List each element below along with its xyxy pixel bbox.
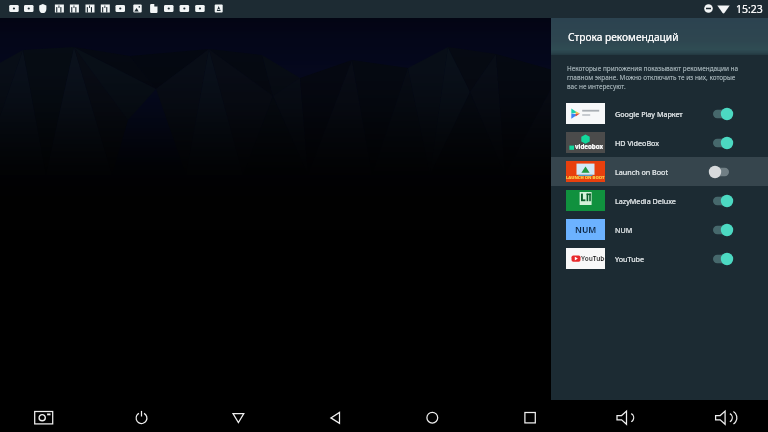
button[interactable]: YouTube bbox=[551, 244, 768, 273]
button[interactable]: Google Play Маркет bbox=[551, 99, 768, 128]
button[interactable]: Screenshot bbox=[28, 401, 60, 431]
button[interactable]: Volume up bbox=[709, 401, 741, 431]
button[interactable]: videobox bbox=[551, 128, 768, 157]
button[interactable]: Power bbox=[126, 401, 158, 431]
button[interactable]: LazyMedia Deluxe bbox=[551, 186, 768, 215]
staticText: NUM bbox=[575, 224, 597, 236]
button[interactable]: LazyMedia Deluxe on bbox=[708, 191, 734, 211]
staticText: YouTube bbox=[581, 254, 605, 263]
staticText: Launch on Boot bbox=[615, 167, 669, 177]
button[interactable]: Home bbox=[416, 401, 448, 431]
staticText: HD VideoBox bbox=[615, 138, 660, 148]
button[interactable]: Back bbox=[319, 401, 351, 431]
staticText: videobox bbox=[575, 142, 604, 150]
button[interactable]: Collapse bbox=[222, 401, 254, 431]
staticText: Google Play Маркет bbox=[615, 109, 683, 119]
button[interactable]: Volume down bbox=[610, 401, 642, 431]
button[interactable]: NUM bbox=[551, 215, 768, 244]
button[interactable]: Launch on Boot off bbox=[708, 162, 734, 182]
button[interactable]: HD VideoBox on bbox=[708, 133, 734, 153]
staticText: LAUNCH ON BOOT bbox=[566, 175, 605, 181]
button[interactable]: NUM on bbox=[708, 220, 734, 240]
button[interactable]: YouTube on bbox=[708, 249, 734, 269]
staticText: NUM bbox=[615, 225, 633, 235]
staticText: 15:23 bbox=[736, 2, 763, 16]
button[interactable]: Recent apps bbox=[514, 401, 546, 431]
staticText: YouTube bbox=[615, 254, 645, 264]
staticText: Некоторые приложения показывают рекоменд… bbox=[567, 64, 741, 91]
staticText: Строка рекомендаций bbox=[568, 30, 679, 44]
button[interactable]: Google Play Маркет on bbox=[708, 104, 734, 124]
button[interactable]: LAUNCH ON BOOT bbox=[551, 157, 768, 186]
staticText: LazyMedia Deluxe bbox=[615, 196, 676, 206]
